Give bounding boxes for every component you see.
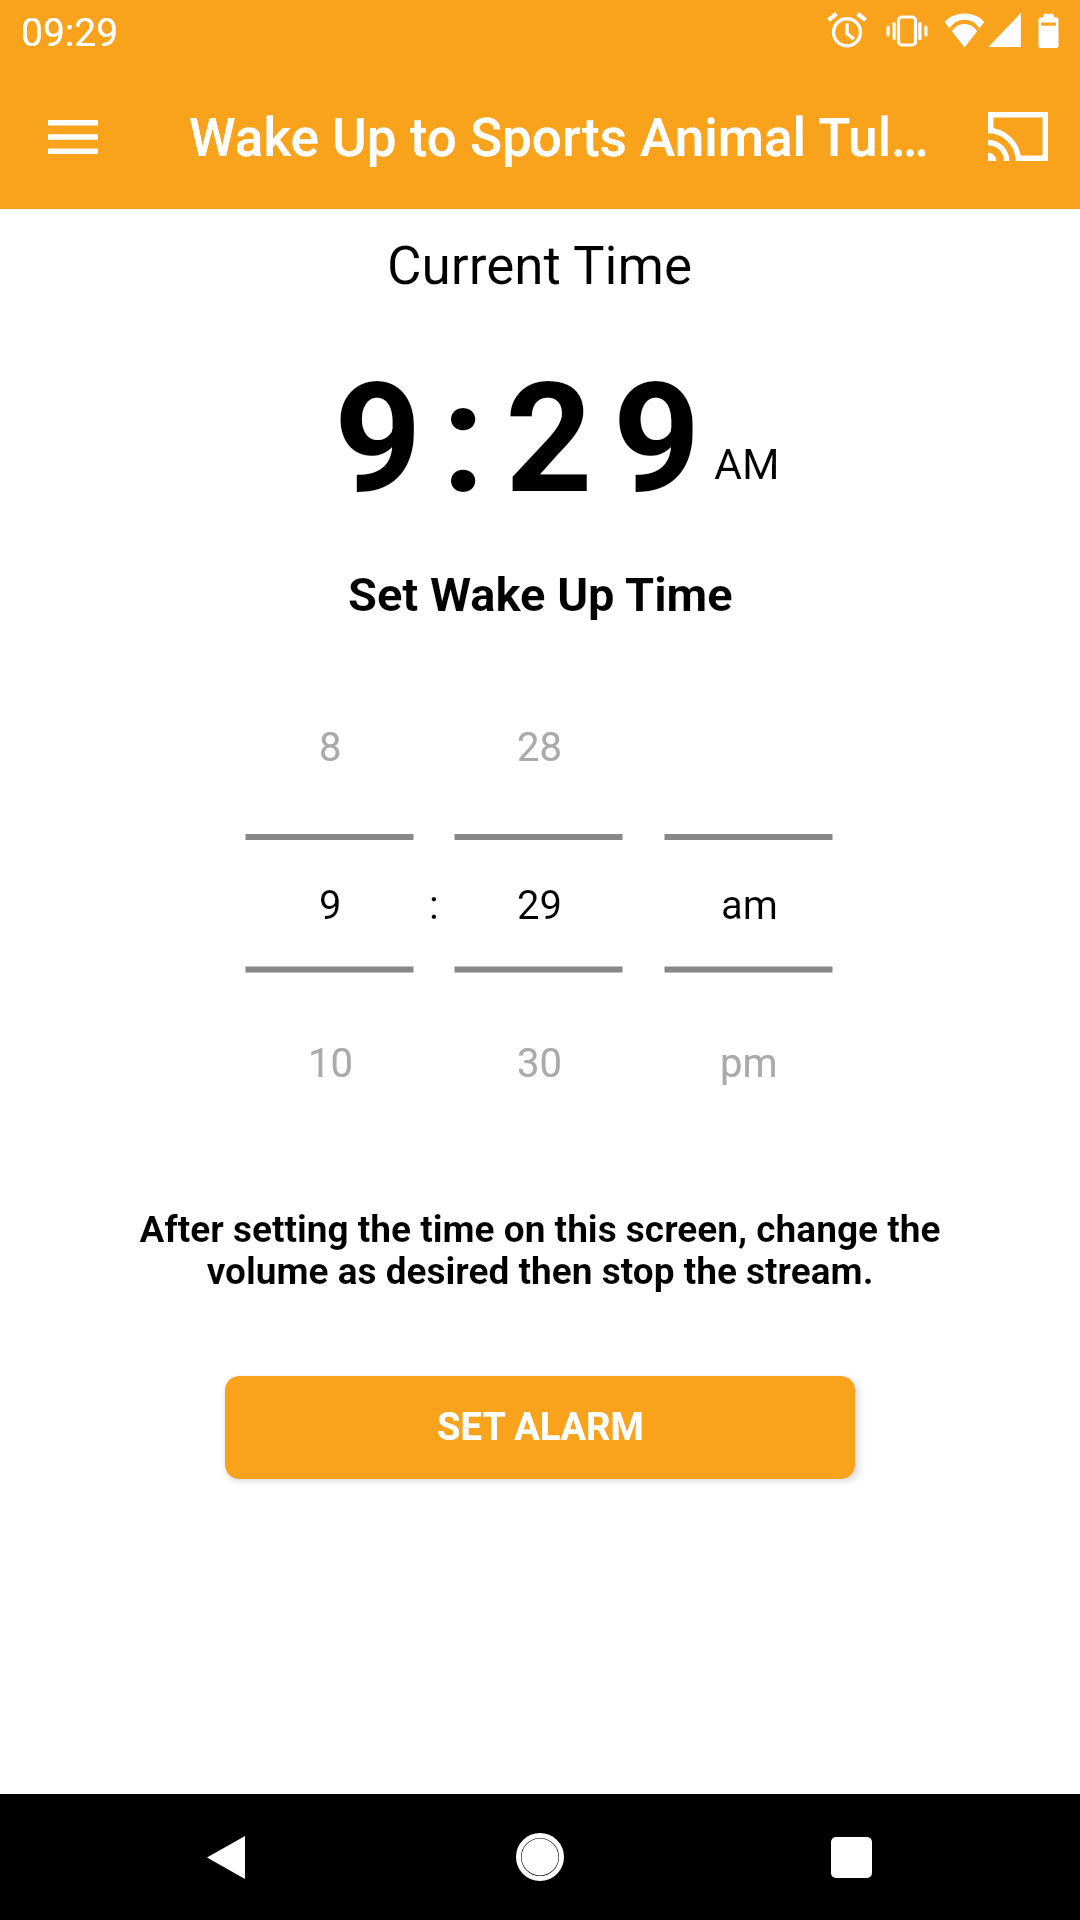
- staticText: 10: [308, 1040, 353, 1087]
- button[interactable]: am: [665, 860, 833, 954]
- staticText: SET ALARM: [437, 1405, 644, 1450]
- button[interactable]: 29: [455, 860, 623, 954]
- staticText: 9:29: [334, 349, 721, 528]
- button[interactable]: Open navigation menu: [48, 120, 98, 154]
- staticText: 28: [517, 724, 562, 771]
- button[interactable]: Cast: [988, 112, 1048, 161]
- button[interactable]: 28: [455, 702, 623, 796]
- staticText: am: [721, 882, 778, 929]
- button[interactable]: 8: [246, 702, 414, 796]
- staticText: After setting the time on this screen, c…: [130, 1208, 950, 1293]
- staticText: 29: [517, 882, 562, 929]
- button[interactable]: SET ALARM: [225, 1376, 855, 1479]
- button[interactable]: Home: [477, 1794, 603, 1920]
- staticText: :: [429, 882, 439, 929]
- staticText: Wake Up to Sports Animal Tul…: [189, 107, 929, 169]
- staticText: pm: [720, 1040, 778, 1087]
- button[interactable]: Recent apps: [788, 1794, 914, 1920]
- button[interactable]: 9: [246, 860, 414, 954]
- staticText: Current Time: [387, 235, 693, 297]
- staticText: AM: [714, 439, 780, 489]
- staticText: Set Wake Up Time: [348, 567, 733, 622]
- button[interactable]: :: [350, 860, 518, 954]
- staticText: 8: [319, 724, 342, 771]
- staticText: 9: [319, 882, 342, 929]
- button[interactable]: 30: [455, 1018, 623, 1112]
- button[interactable]: Back: [163, 1794, 289, 1920]
- staticText: 30: [517, 1040, 562, 1087]
- staticText: 09:29: [21, 10, 119, 56]
- button[interactable]: pm: [665, 1018, 833, 1112]
- button[interactable]: 10: [246, 1018, 414, 1112]
